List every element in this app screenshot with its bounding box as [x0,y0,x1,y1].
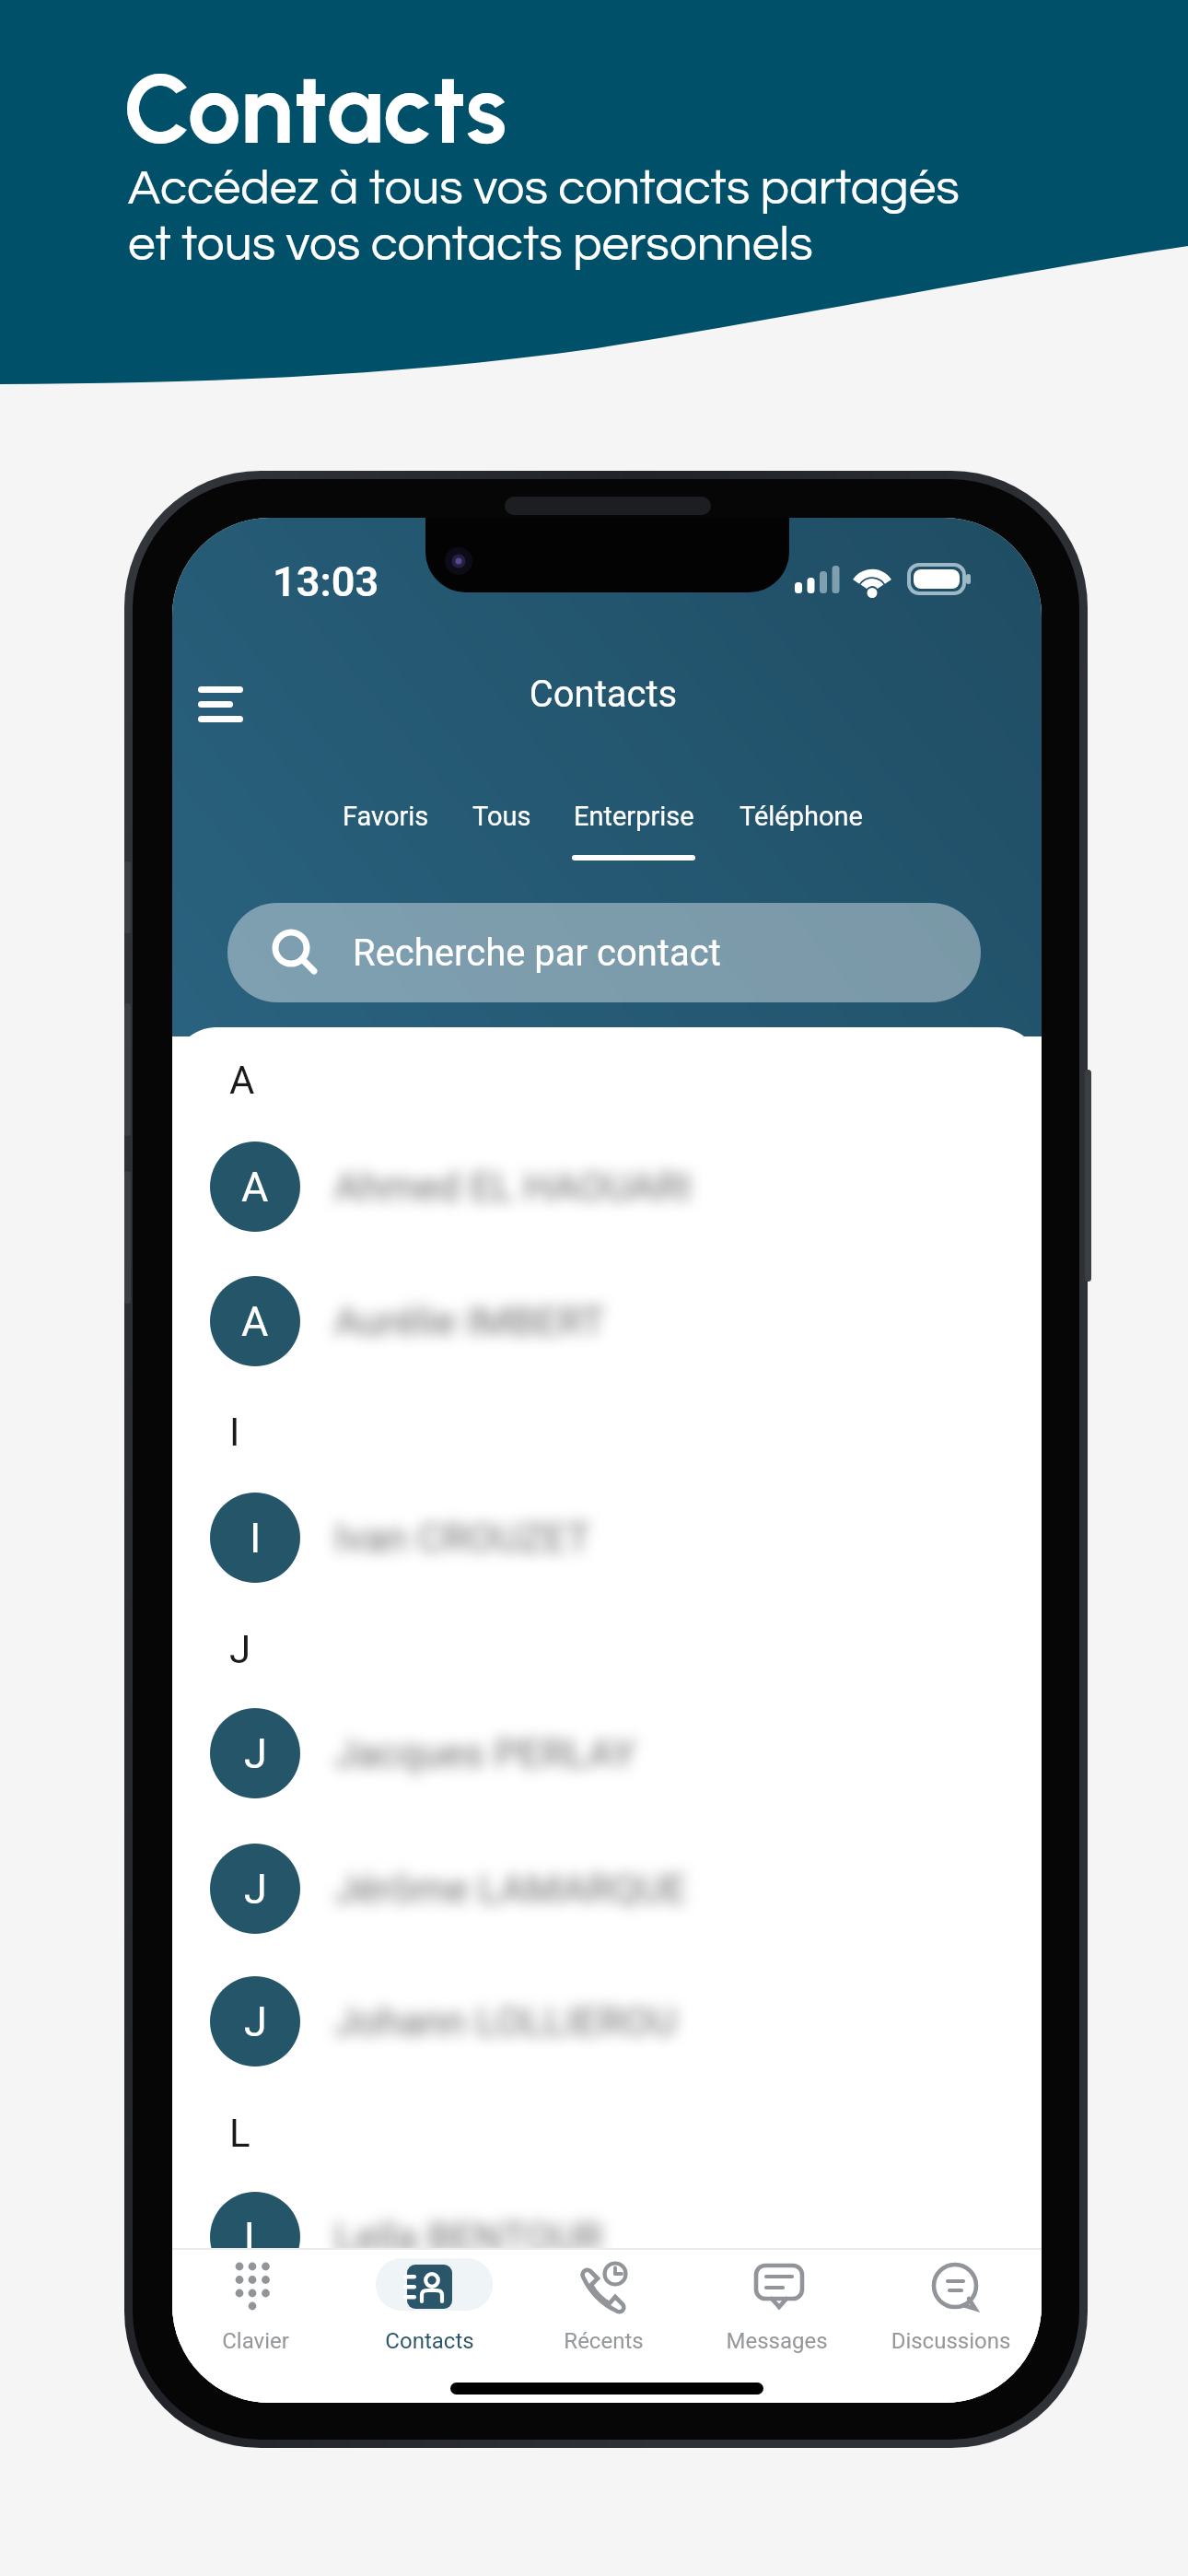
staticText: Téléphone [740,801,863,832]
staticText: Tous [472,801,531,832]
staticText: L [229,2111,250,2156]
staticText: Jacques PERLAY [334,1730,635,1776]
staticText: 13:03 [273,557,379,606]
staticText: Jérôme LAMARQUE [334,1866,687,1912]
staticText: Accédez à tous vos contacts partagés et … [128,164,960,270]
staticText: Clavier [172,2328,429,2374]
button[interactable]: Contacts [346,2248,520,2359]
staticText: Contacts [256,2328,603,2374]
staticText: Johann LOLLIEROU [334,1998,677,2044]
staticText: J [229,1627,251,1672]
staticText: Contacts [123,52,507,167]
staticText: I [229,1410,240,1455]
button[interactable]: Menu [172,659,274,732]
staticText: I [250,1514,262,1563]
staticText: A [241,1163,269,1212]
button[interactable]: J [172,1708,1042,1798]
button[interactable]: Téléphone [700,786,903,847]
staticText: Récents [430,2328,777,2374]
button[interactable]: A [172,1276,1042,1366]
button[interactable]: Clavier [172,2248,346,2359]
button[interactable]: L [172,2192,1042,2282]
staticText: Favoris [343,801,429,832]
button[interactable]: A [172,1142,1042,1232]
staticText: Messages [603,2328,950,2374]
staticText: Recherche par contact [353,931,721,975]
staticText: Leïla BENTOUR [334,2214,603,2260]
staticText: Discussions [777,2328,1042,2374]
button[interactable]: I [172,1493,1042,1583]
staticText: L [244,2213,267,2262]
staticText: Contacts [172,673,1038,716]
button[interactable]: Favoris [285,786,487,847]
button[interactable]: Recherche par contact [227,903,981,1002]
button[interactable]: Récents [520,2248,694,2359]
staticText: Aurélie IMBERT [334,1298,605,1344]
button[interactable]: J [172,1844,1042,1934]
button[interactable]: Enterprise [532,786,735,847]
staticText: Enterprise [574,801,694,832]
staticText: Ivan CROUZET [334,1515,591,1561]
staticText: J [244,1865,267,1914]
staticText: J [244,1729,267,1778]
staticText: Ahmed EL HAOUARI [334,1164,692,1210]
button[interactable]: Tous [401,786,603,847]
other: Status: signal, wifi, battery [795,565,979,600]
button[interactable]: J [172,1976,1042,2067]
staticText: A [229,1058,255,1103]
staticText: A [241,1297,269,1346]
staticText: J [244,1997,267,2046]
button[interactable]: Discussions [868,2248,1042,2359]
button[interactable]: Messages [693,2248,868,2359]
